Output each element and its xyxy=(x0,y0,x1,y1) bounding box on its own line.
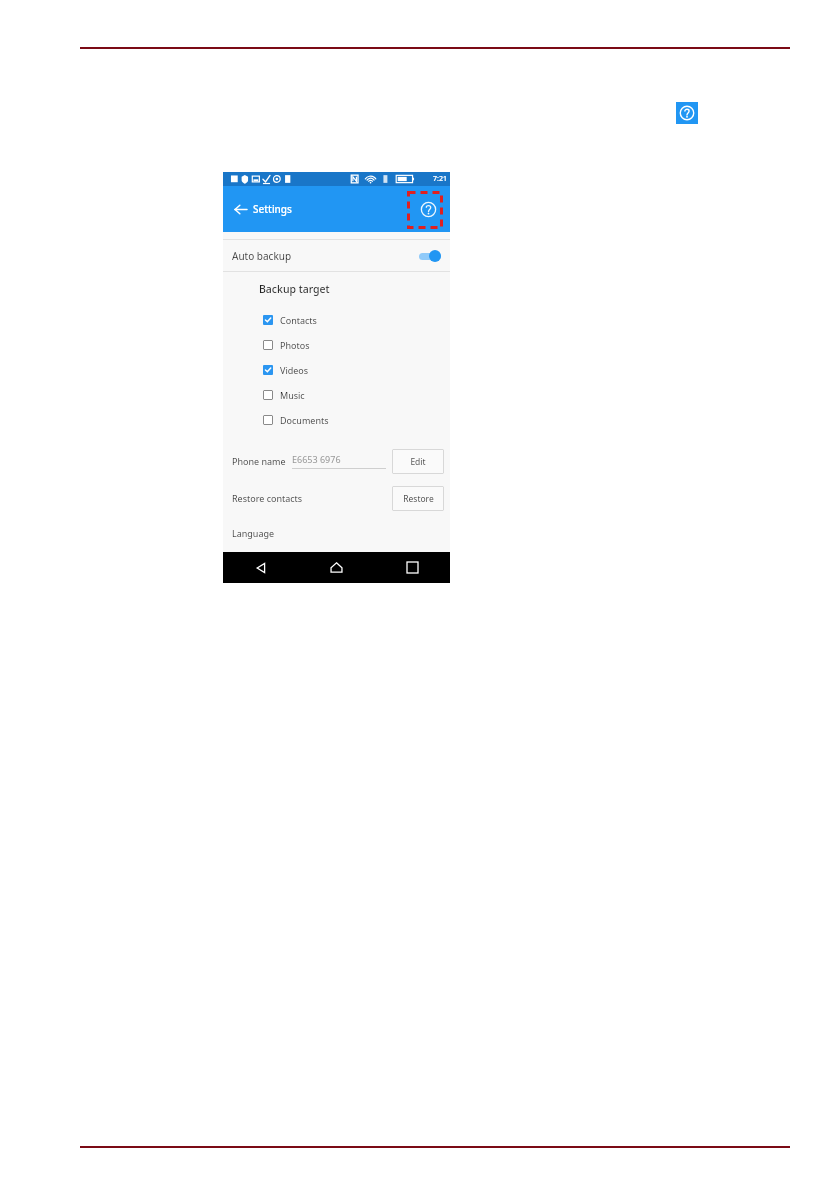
button[interactable]: Edit xyxy=(392,449,444,474)
staticText: Phone name xyxy=(232,455,286,467)
staticText: Videos xyxy=(280,364,309,376)
button[interactable]: Home xyxy=(298,552,374,583)
button[interactable]: Documents xyxy=(223,407,450,432)
staticText: Language xyxy=(232,527,275,539)
button[interactable]: Back xyxy=(229,198,251,220)
staticText: Edit xyxy=(410,456,426,468)
staticText: 7:21 xyxy=(433,174,447,184)
staticText: Restore xyxy=(403,493,434,505)
staticText: Restore contacts xyxy=(232,492,303,504)
button[interactable]: Contacts xyxy=(223,307,450,332)
staticText: Music xyxy=(280,389,305,401)
button[interactable]: Videos xyxy=(223,357,450,382)
staticText: Contacts xyxy=(280,314,317,326)
button[interactable]: Help xyxy=(415,196,441,222)
staticText: Backup target xyxy=(259,282,450,296)
button[interactable]: Auto backup xyxy=(223,240,450,271)
staticText: E6653 6976 xyxy=(292,453,341,465)
staticText: Photos xyxy=(280,339,310,351)
button[interactable]: Restore xyxy=(392,486,444,511)
button[interactable]: Photos xyxy=(223,332,450,357)
staticText: Auto backup xyxy=(232,249,292,263)
staticText: Documents xyxy=(280,414,329,426)
button[interactable]: Back xyxy=(223,552,298,583)
button[interactable]: Language xyxy=(223,523,450,543)
button[interactable]: Auto backup toggle xyxy=(419,250,441,262)
button[interactable]: Music xyxy=(223,382,450,407)
button[interactable]: Recents xyxy=(374,552,450,583)
button[interactable]: Help xyxy=(676,102,698,124)
staticText: Settings xyxy=(253,202,292,216)
